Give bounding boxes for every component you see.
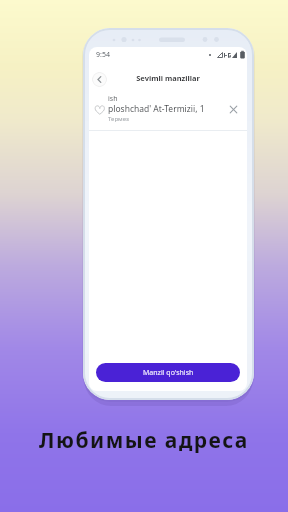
button[interactable] [92, 72, 107, 87]
staticText: ploshchad' At-Termizii, 1 [108, 103, 205, 115]
staticText: Sevimli manzillar [89, 73, 247, 83]
button[interactable] [229, 105, 238, 114]
staticText: Любимые адреса [0, 426, 288, 455]
button[interactable]: ish [89, 93, 247, 125]
button[interactable]: Manzil qo'shish [96, 363, 240, 382]
staticText: Термез [108, 115, 129, 123]
staticText: Manzil qo'shish [143, 368, 194, 378]
staticText: ish [108, 94, 118, 104]
staticText: 9:54 [96, 50, 110, 60]
